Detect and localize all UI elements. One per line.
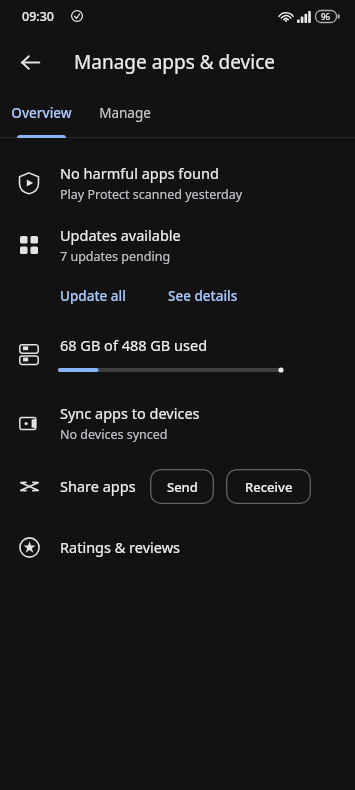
- button[interactable]: See details: [154, 281, 252, 311]
- staticText: Updates available: [60, 225, 181, 245]
- staticText: 96: [321, 11, 331, 22]
- staticText: 09:30: [22, 8, 55, 25]
- staticText: Update all: [60, 287, 126, 305]
- staticText: Sync apps to devices: [60, 403, 200, 423]
- staticText: 7 updates pending: [60, 248, 171, 265]
- button[interactable]: Send: [150, 469, 214, 504]
- staticText: Overview: [11, 104, 72, 122]
- button[interactable]: Back: [8, 40, 52, 84]
- staticText: Send: [167, 478, 198, 496]
- staticText: See details: [168, 287, 238, 305]
- staticText: Ratings & reviews: [60, 537, 181, 557]
- button[interactable]: Overview: [0, 92, 83, 134]
- staticText: 68 GB of 488 GB used: [60, 335, 208, 355]
- button[interactable]: Ratings & reviews: [0, 518, 355, 576]
- button[interactable]: Sync apps to devices: [0, 392, 355, 454]
- staticText: No devices synced: [60, 426, 168, 443]
- staticText: Share apps: [60, 476, 136, 496]
- button[interactable]: Manage: [83, 92, 166, 134]
- staticText: Manage: [99, 104, 151, 122]
- button[interactable]: Updates available: [0, 214, 355, 276]
- staticText: No harmful apps found: [60, 163, 219, 183]
- staticText: Manage apps & device: [74, 49, 275, 75]
- button[interactable]: Update all: [46, 281, 140, 311]
- staticText: Play Protect scanned yesterday: [60, 186, 243, 203]
- button[interactable]: No harmful apps found: [0, 152, 355, 214]
- button[interactable]: 68 GB of 488 GB used: [0, 316, 355, 392]
- button[interactable]: Receive: [226, 469, 311, 504]
- staticText: Receive: [245, 478, 293, 496]
